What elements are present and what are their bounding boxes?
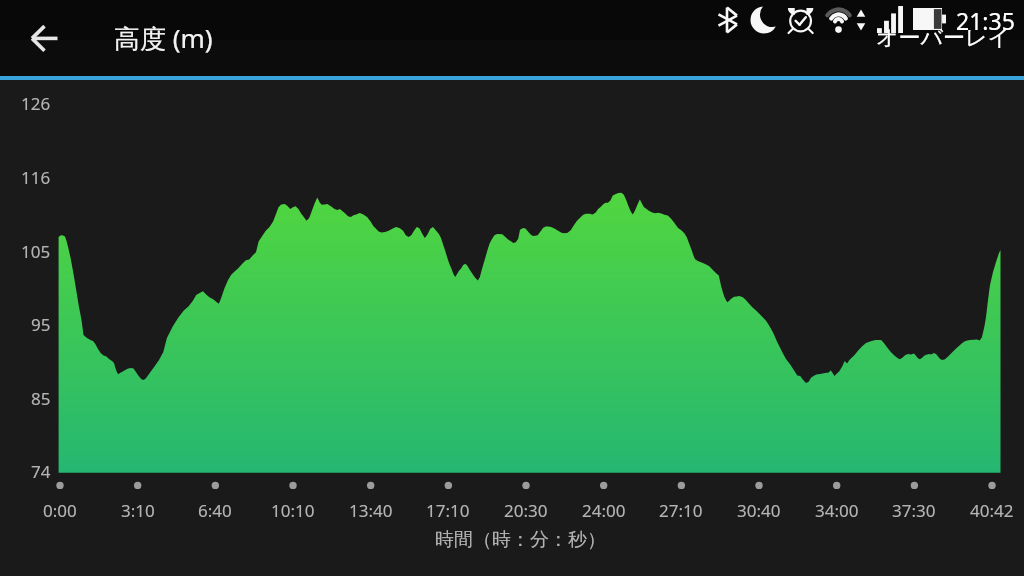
staticText: 高度 (m) <box>114 20 213 56</box>
staticText: 30:40 <box>737 499 781 522</box>
staticText: 時間（時：分：秒） <box>435 528 606 552</box>
staticText: 105 <box>21 240 51 263</box>
staticText: 37:30 <box>892 499 936 522</box>
staticText: 6:40 <box>198 499 232 522</box>
staticText: 24:00 <box>582 499 626 522</box>
button[interactable]: Back <box>20 14 68 62</box>
staticText: オーバーレイ <box>876 24 1011 52</box>
staticText: 20:30 <box>504 499 548 522</box>
staticText: 95 <box>31 313 51 336</box>
staticText: 74 <box>31 460 51 483</box>
staticText: 27:10 <box>659 499 703 522</box>
staticText: 0:00 <box>43 499 77 522</box>
staticText: 10:10 <box>271 499 315 522</box>
staticText: 21:35 <box>956 5 1015 36</box>
staticText: 17:10 <box>426 499 470 522</box>
staticText: 13:40 <box>349 499 393 522</box>
staticText: 85 <box>31 387 51 410</box>
staticText: 126 <box>21 92 51 115</box>
button[interactable]: Altitude chart <box>0 0 1024 576</box>
staticText: 116 <box>21 166 51 189</box>
staticText: 3:10 <box>121 499 155 522</box>
staticText: 40:42 <box>970 499 1014 522</box>
staticText: 34:00 <box>815 499 859 522</box>
